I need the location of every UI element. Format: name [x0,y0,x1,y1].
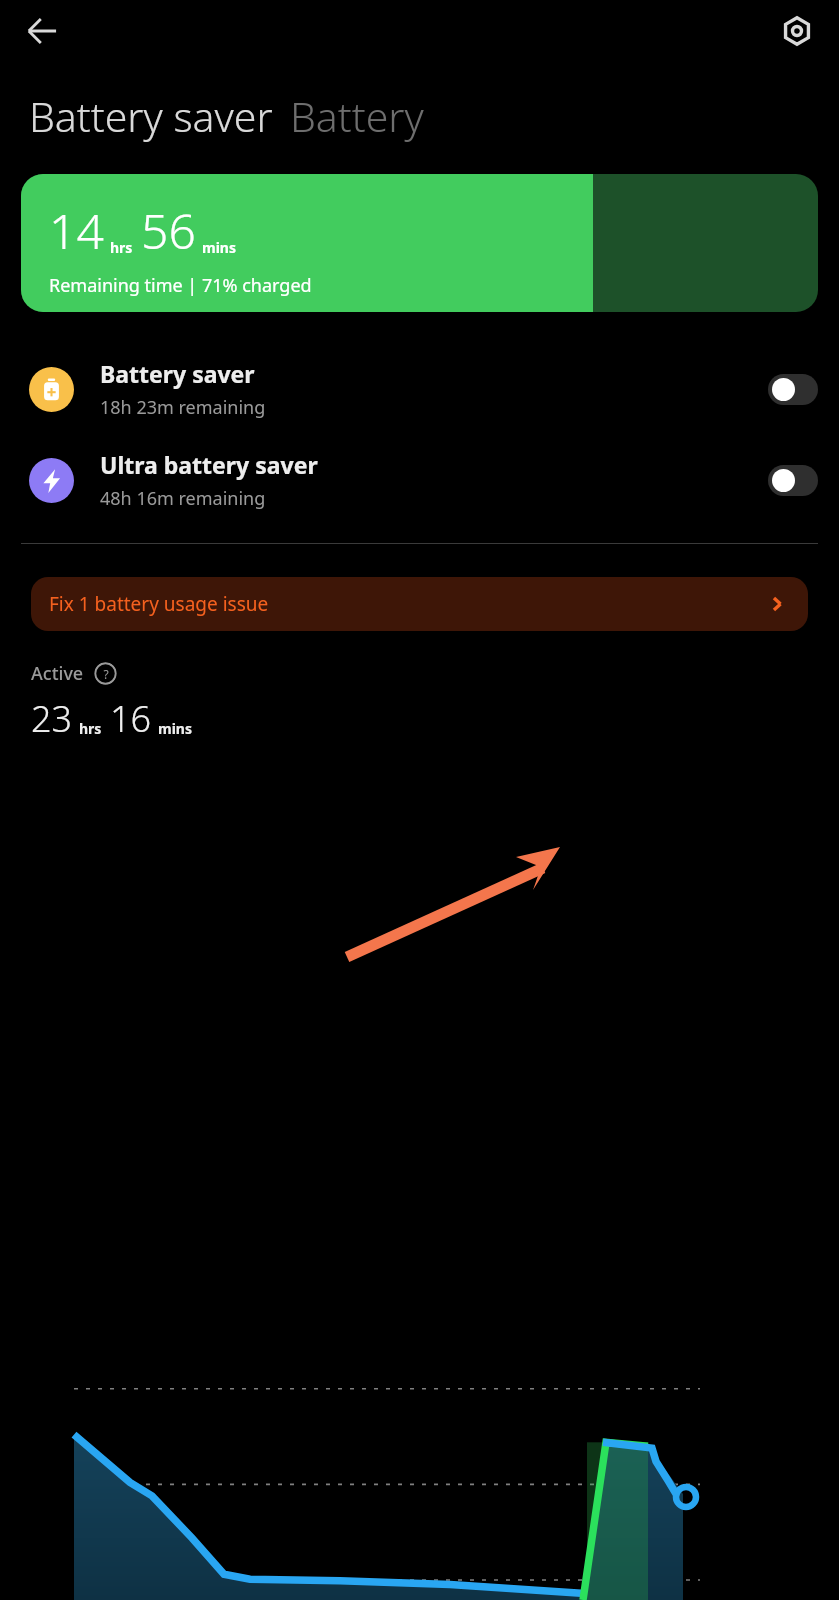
staticText: 56 [141,198,196,263]
staticText: mins [202,238,236,257]
staticText: 14 [49,198,104,263]
staticText: mins [158,719,192,738]
staticText: Fix 1 battery usage issue [49,591,269,617]
button[interactable]: Toggle Ultra battery saver [768,465,818,496]
button[interactable]: Battery [290,88,424,144]
staticText: hrs [110,238,133,257]
button[interactable]: Fix 1 battery usage issue [31,577,808,631]
button[interactable]: Toggle Battery saver [768,374,818,405]
button[interactable]: Battery saver [0,358,839,420]
staticText: hrs [79,719,102,738]
button[interactable]: Back [20,9,64,53]
button[interactable]: Ultra battery saver [0,449,839,511]
staticText: 48h 16m remaining [100,486,266,511]
staticText: ? [103,666,109,682]
staticText: Remaining time | 71% charged [49,273,312,298]
staticText: Battery saver [29,88,273,144]
staticText: 16 [110,694,152,743]
button[interactable]: 14 [21,174,818,312]
staticText: Battery saver [100,358,255,389]
button[interactable]: Help [94,662,117,685]
button[interactable]: Settings [775,9,819,53]
staticText: 18h 23m remaining [100,395,266,420]
staticText: 23 [31,694,73,743]
staticText: Battery [290,88,424,144]
staticText: Ultra battery saver [100,449,318,480]
staticText: Active [31,661,84,686]
